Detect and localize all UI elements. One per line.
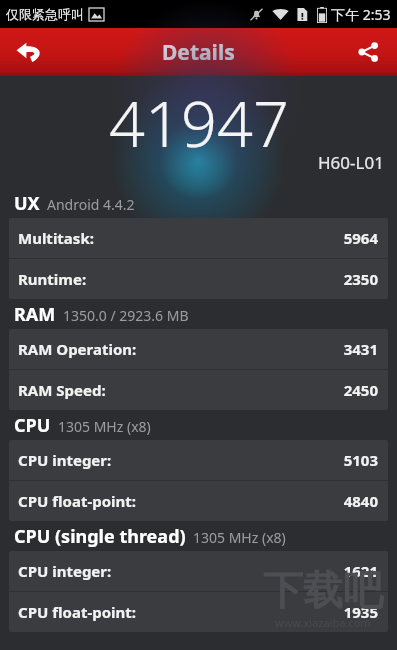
staticText: CPU (single thread) bbox=[14, 524, 186, 549]
button[interactable]: CPU integer: bbox=[9, 440, 388, 480]
button[interactable]: CPU float-point: bbox=[9, 481, 388, 521]
staticText: 41947 bbox=[109, 80, 289, 166]
staticText: 4840 bbox=[343, 491, 378, 511]
staticText: Multitask: bbox=[18, 228, 343, 248]
staticText: 1305 MHz (x8) bbox=[193, 528, 286, 547]
staticText: CPU bbox=[14, 413, 51, 438]
staticText: H60-L01 bbox=[318, 151, 384, 174]
staticText: 1935 bbox=[343, 602, 378, 622]
staticText: Android 4.4.2 bbox=[47, 195, 135, 214]
button[interactable]: CPU integer: bbox=[9, 551, 388, 591]
staticText: RAM Operation: bbox=[18, 339, 343, 359]
staticText: 1621 bbox=[343, 561, 378, 581]
button[interactable]: Runtime: bbox=[9, 259, 388, 299]
staticText: 1305 MHz (x8) bbox=[58, 417, 151, 436]
button[interactable]: RAM Operation: bbox=[9, 329, 388, 369]
button[interactable]: Multitask: bbox=[9, 218, 388, 258]
staticText: CPU float-point: bbox=[18, 602, 343, 622]
staticText: CPU float-point: bbox=[18, 491, 343, 511]
staticText: 2450 bbox=[343, 380, 378, 400]
staticText: CPU integer: bbox=[18, 561, 343, 581]
staticText: 下载吧 bbox=[263, 565, 383, 615]
staticText: 5964 bbox=[343, 228, 378, 248]
staticText: 2350 bbox=[343, 269, 378, 289]
staticText: 3431 bbox=[343, 339, 378, 359]
staticText: 1350.0 / 2923.6 MB bbox=[63, 306, 189, 325]
button[interactable]: CPU float-point: bbox=[9, 592, 388, 632]
button[interactable]: RAM Speed: bbox=[9, 370, 388, 410]
staticText: RAM Speed: bbox=[18, 380, 343, 400]
staticText: RAM bbox=[14, 302, 56, 327]
staticText: 5103 bbox=[343, 450, 378, 470]
button[interactable]: Share bbox=[339, 28, 397, 76]
staticText: Details bbox=[162, 38, 235, 67]
staticText: Runtime: bbox=[18, 269, 343, 289]
button[interactable]: Back bbox=[0, 28, 58, 76]
staticText: CPU integer: bbox=[18, 450, 343, 470]
staticText: 仅限紧急呼叫 bbox=[6, 6, 84, 22]
staticText: www.xiazaiba.com bbox=[275, 615, 371, 630]
staticText: UX bbox=[14, 191, 40, 216]
staticText: 下午 2:53 bbox=[331, 5, 391, 24]
